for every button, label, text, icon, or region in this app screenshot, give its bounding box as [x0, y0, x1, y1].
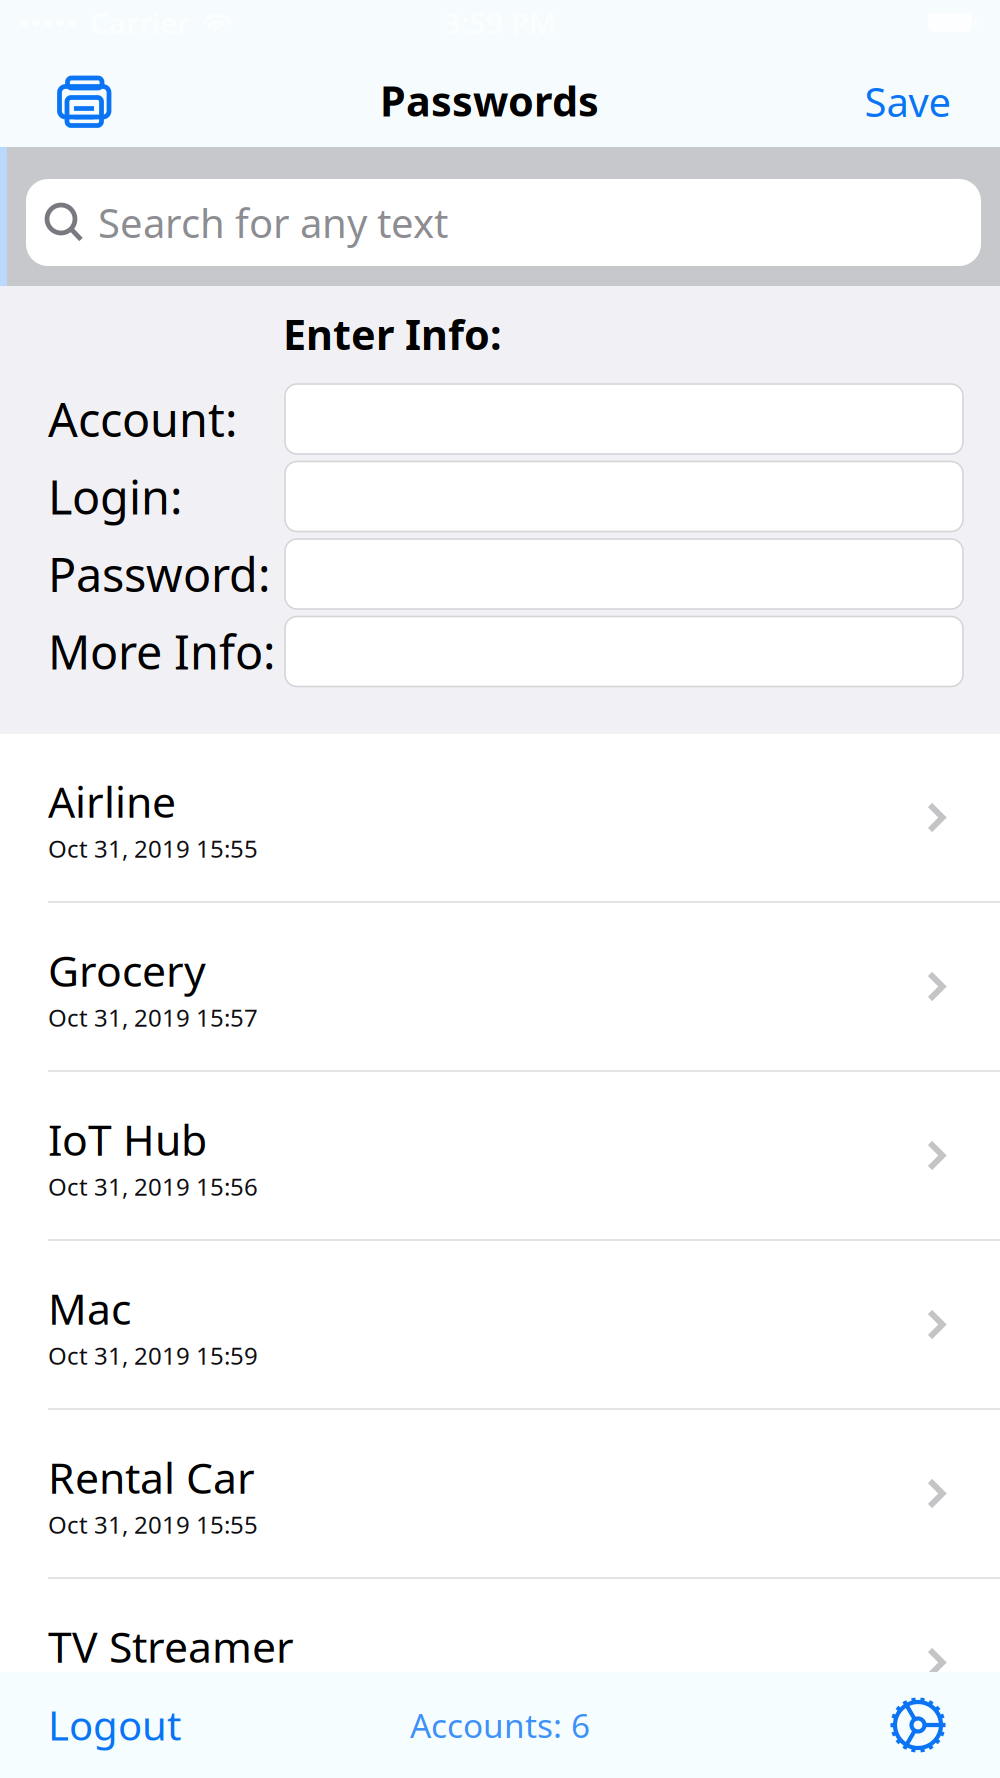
- button[interactable]: Save: [853, 58, 963, 128]
- staticText: More Info:: [48, 620, 276, 682]
- staticText: Login:: [48, 465, 183, 527]
- button[interactable]: Rental Car: [0, 1410, 1000, 1577]
- button[interactable]: Settings: [878, 1677, 958, 1773]
- staticText: Enter Info:: [283, 307, 502, 361]
- staticText: IoT Hub: [48, 1111, 207, 1167]
- staticText: Passwords: [380, 73, 599, 128]
- staticText: Rental Car: [48, 1449, 255, 1505]
- button[interactable]: IoT Hub: [0, 1072, 1000, 1239]
- staticText: Accounts: 6: [410, 1703, 590, 1747]
- button[interactable]: Airline: [0, 734, 1000, 901]
- staticText: Oct 31, 2019 15:56: [48, 1170, 258, 1202]
- staticText: TV Streamer: [48, 1618, 294, 1674]
- staticText: Mac: [48, 1280, 131, 1336]
- button[interactable]: TV Streamer: [0, 1579, 1000, 1746]
- staticText: Oct 31, 2019 15:57: [48, 1001, 258, 1033]
- staticText: Logout: [48, 1698, 181, 1751]
- staticText: Airline: [48, 773, 176, 829]
- staticText: Oct 31, 2019 15:59: [48, 1339, 258, 1371]
- button[interactable]: Print: [42, 58, 126, 128]
- staticText: Oct 31, 2019 15:55: [48, 832, 258, 864]
- button[interactable]: Grocery: [0, 903, 1000, 1070]
- button[interactable]: Mac: [0, 1241, 1000, 1408]
- staticText: Password:: [48, 543, 271, 605]
- staticText: Save: [864, 75, 951, 128]
- staticText: Grocery: [48, 942, 206, 998]
- staticText: Oct 31, 2019 15:55: [48, 1508, 258, 1540]
- staticText: Search for any text: [98, 196, 448, 249]
- staticText: Account:: [48, 388, 238, 450]
- button[interactable]: Logout: [48, 1679, 181, 1771]
